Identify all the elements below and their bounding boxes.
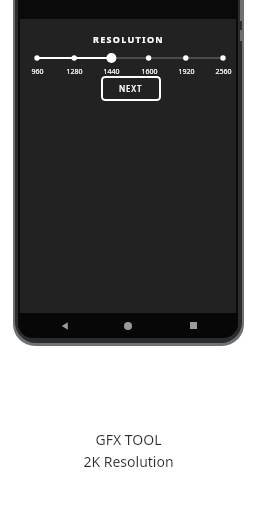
- staticText: 2K Resolution: [83, 452, 174, 471]
- staticText: 1920: [178, 67, 195, 77]
- staticText: 960: [31, 67, 44, 77]
- button[interactable]: 960: [20, 52, 236, 92]
- staticText: RESOLUTION: [93, 33, 164, 45]
- staticText: 1280: [66, 67, 83, 77]
- staticText: 1600: [141, 67, 158, 77]
- button[interactable]: NEXT: [101, 76, 161, 101]
- button[interactable]: Home: [111, 313, 145, 338]
- staticText: GFX TOOL: [95, 430, 162, 449]
- staticText: 1440: [103, 67, 120, 77]
- button[interactable]: Recent apps: [176, 313, 210, 338]
- staticText: NEXT: [119, 83, 143, 94]
- button[interactable]: Back: [48, 313, 82, 338]
- staticText: 2560: [215, 67, 232, 77]
